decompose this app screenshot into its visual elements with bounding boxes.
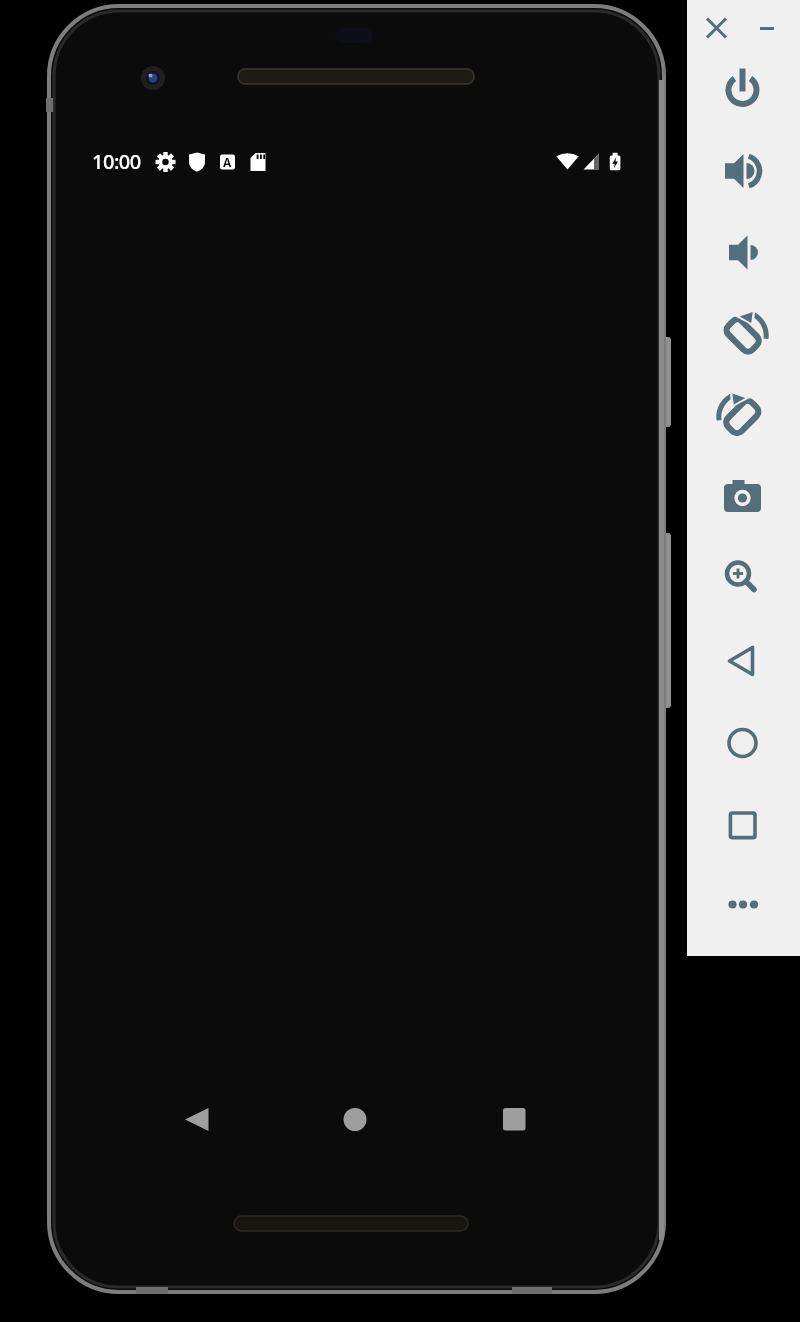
button[interactable] [715, 388, 771, 444]
button[interactable] [715, 225, 771, 281]
button[interactable] [715, 796, 771, 852]
button[interactable] [699, 10, 735, 46]
button[interactable] [715, 633, 771, 689]
button[interactable] [715, 306, 771, 362]
button[interactable] [715, 62, 771, 118]
button[interactable] [178, 1102, 216, 1138]
button[interactable] [715, 879, 771, 935]
button[interactable] [715, 143, 771, 199]
button[interactable] [715, 551, 771, 607]
button[interactable] [715, 714, 771, 770]
button[interactable] [495, 1102, 533, 1138]
button[interactable] [715, 469, 771, 525]
button[interactable] [336, 1102, 374, 1138]
staticText: A [223, 154, 232, 170]
button[interactable] [749, 10, 785, 46]
staticText: 10:00 [92, 148, 141, 175]
